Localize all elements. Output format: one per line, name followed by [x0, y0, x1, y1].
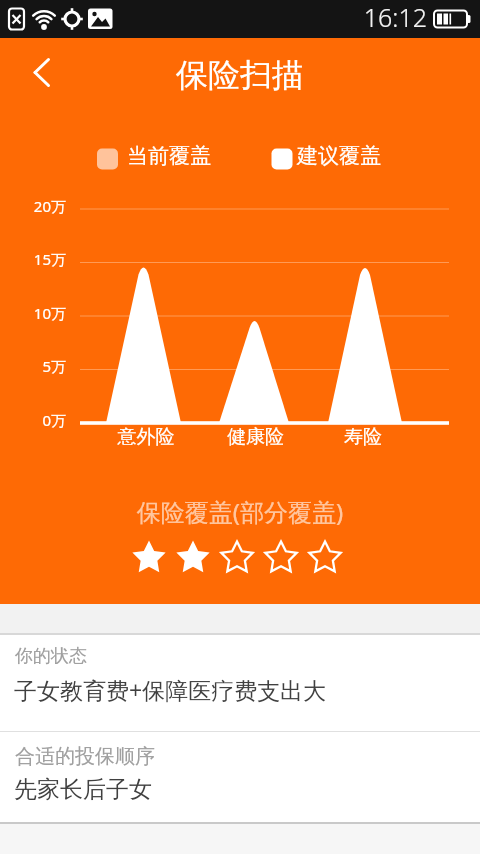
button[interactable] [18, 48, 66, 96]
staticText: 10万 [0, 303, 66, 323]
button[interactable] [0, 732, 480, 822]
staticText: 先家长后子女 [14, 775, 152, 804]
staticText: 5万 [0, 356, 66, 376]
button[interactable] [0, 635, 480, 731]
staticText: 合适的投保顺序 [15, 744, 155, 769]
staticText: 20万 [0, 196, 66, 216]
staticText: 保险扫描 [0, 55, 480, 95]
staticText: 建议覆盖 [297, 143, 381, 169]
staticText: 你的状态 [15, 645, 87, 668]
staticText: 当前覆盖 [127, 143, 211, 169]
staticText: 16:12 [355, 0, 427, 34]
staticText: 寿险 [303, 425, 423, 449]
staticText: 子女教育费+保障医疗费支出大 [14, 674, 327, 705]
staticText: 15万 [0, 249, 66, 269]
staticText: 健康险 [195, 425, 316, 449]
staticText: 保险覆盖(部分覆盖) [0, 495, 480, 528]
staticText: 意外险 [86, 425, 206, 449]
staticText: 0万 [0, 410, 66, 430]
